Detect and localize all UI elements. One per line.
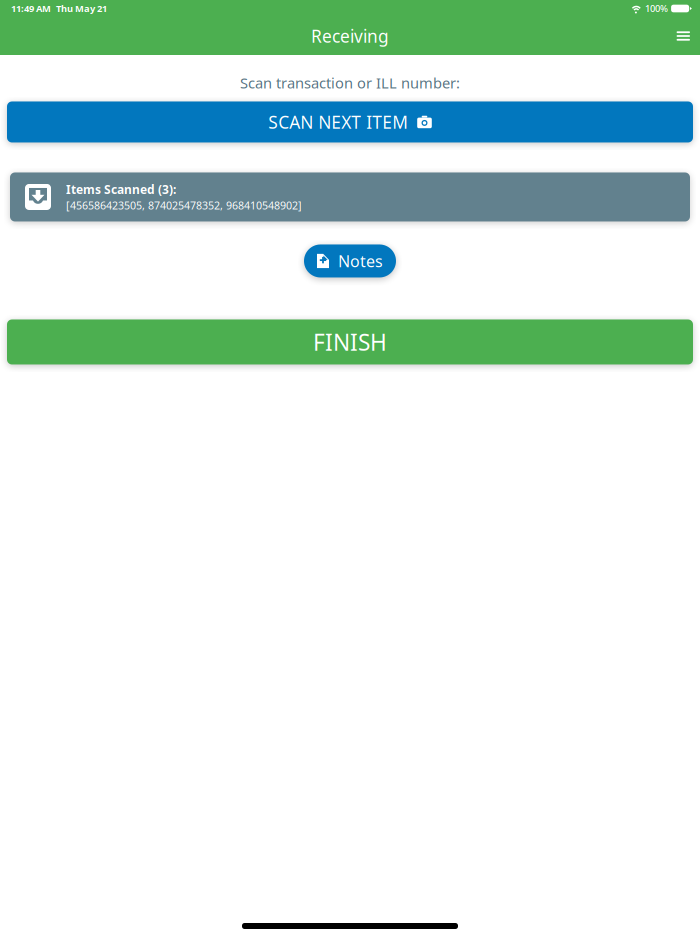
staticText: Scan transaction or ILL number: (240, 73, 460, 92)
button[interactable]: SCAN NEXT ITEM (7, 101, 693, 142)
staticText: Receiving (311, 24, 389, 47)
button[interactable]: FINISH (7, 319, 693, 364)
button[interactable]: Menu (666, 21, 700, 51)
staticText: 11:49 AM (11, 2, 51, 15)
staticText: [456586423505, 874025478352, 96841054890… (66, 198, 302, 213)
button[interactable]: Notes (304, 244, 396, 277)
staticText: Notes (338, 250, 383, 272)
staticText: 100% (645, 2, 668, 15)
staticText: SCAN NEXT ITEM (268, 110, 408, 133)
staticText: Items Scanned (3): (66, 181, 176, 197)
staticText: FINISH (313, 327, 387, 357)
staticText: Thu May 21 (56, 2, 107, 15)
